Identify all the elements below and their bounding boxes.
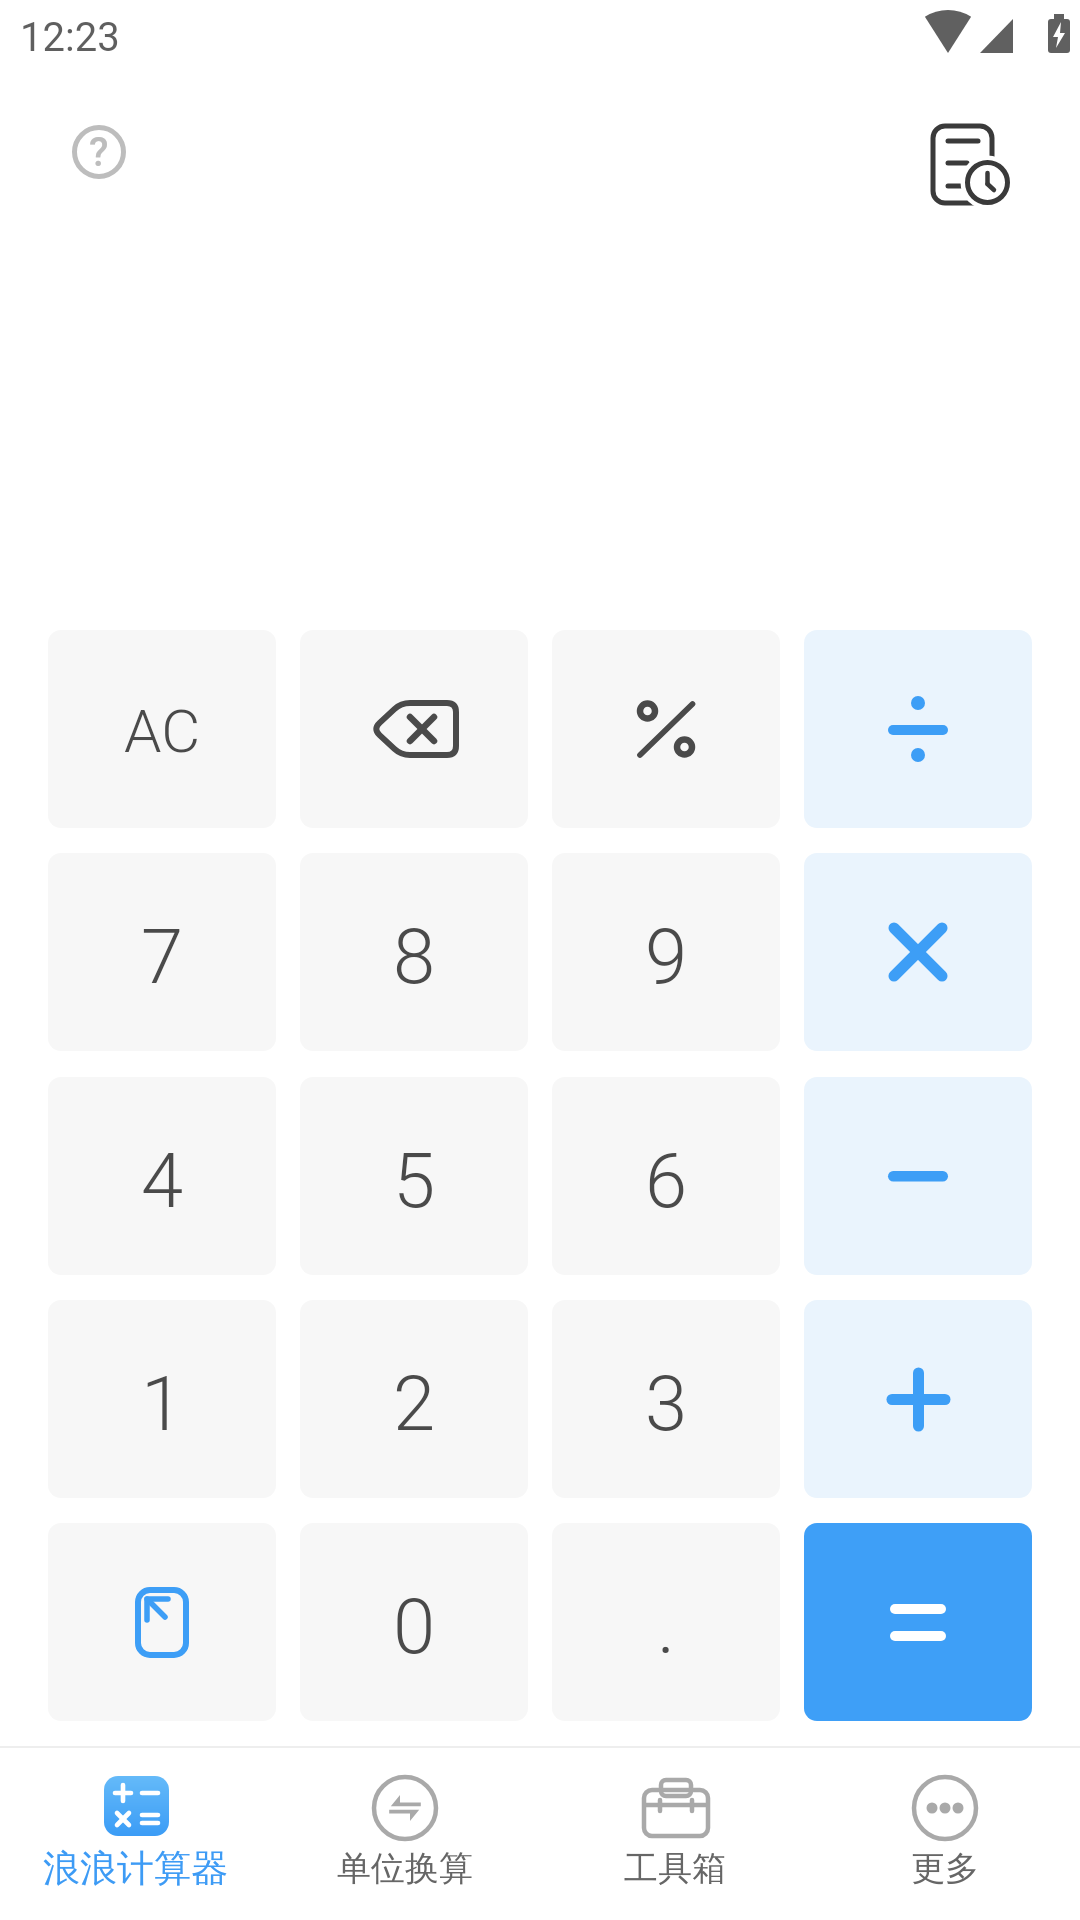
button[interactable] [920, 113, 1020, 213]
button[interactable] [804, 853, 1032, 1051]
button[interactable]: 0 [300, 1523, 528, 1721]
button[interactable]: 2 [300, 1300, 528, 1498]
staticText: 7 [141, 912, 184, 1001]
button[interactable] [804, 1077, 1032, 1275]
staticText: 0 [393, 1582, 436, 1671]
button[interactable] [804, 1300, 1032, 1498]
staticText: 12:23 [20, 14, 120, 61]
staticText: 2 [393, 1359, 436, 1448]
button[interactable]: 更多 [810, 1748, 1080, 1920]
button[interactable] [552, 630, 780, 828]
button[interactable]: 7 [48, 853, 276, 1051]
button[interactable] [300, 630, 528, 828]
button[interactable]: 3 [552, 1300, 780, 1498]
button[interactable] [48, 1523, 276, 1721]
staticText: 5 [393, 1136, 436, 1225]
button[interactable]: AC [48, 630, 276, 828]
button[interactable]: 5 [300, 1077, 528, 1275]
staticText: . [657, 1582, 676, 1671]
staticText: 9 [645, 912, 688, 1001]
staticText: 浪浪计算器 [43, 1845, 228, 1892]
button[interactable]: 工具箱 [540, 1748, 810, 1920]
staticText: 单位换算 [337, 1847, 473, 1890]
button[interactable]: 4 [48, 1077, 276, 1275]
button[interactable]: 6 [552, 1077, 780, 1275]
staticText: 更多 [911, 1847, 979, 1890]
staticText: 3 [645, 1359, 688, 1448]
staticText: ? [89, 129, 109, 176]
button[interactable] [804, 1523, 1032, 1721]
staticText: 1 [141, 1359, 184, 1448]
staticText: 8 [393, 912, 436, 1001]
button[interactable]: 单位换算 [270, 1748, 540, 1920]
button[interactable]: 9 [552, 853, 780, 1051]
button[interactable]: 浪浪计算器 [0, 1748, 270, 1920]
button[interactable]: ? [68, 121, 130, 183]
staticText: AC [124, 696, 201, 766]
button[interactable]: 1 [48, 1300, 276, 1498]
staticText: 6 [645, 1136, 688, 1225]
staticText: 4 [141, 1136, 184, 1225]
button[interactable]: . [552, 1523, 780, 1721]
staticText: 工具箱 [624, 1847, 726, 1890]
button[interactable]: 8 [300, 853, 528, 1051]
button[interactable] [804, 630, 1032, 828]
